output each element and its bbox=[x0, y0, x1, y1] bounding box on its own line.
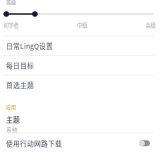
button[interactable]: 首选主题 bbox=[0, 75, 160, 94]
staticText: 高级 bbox=[145, 21, 155, 29]
button[interactable]: 日常LingQ设置 bbox=[0, 36, 160, 55]
staticText: 系统 bbox=[6, 126, 18, 134]
staticText: 首选主题 bbox=[6, 80, 34, 90]
staticText: 应用 bbox=[6, 103, 16, 110]
staticText: 等级 bbox=[6, 0, 16, 6]
staticText: 使用行动网路下载 bbox=[6, 138, 62, 148]
button[interactable]: 每日目标 bbox=[0, 56, 160, 75]
button[interactable]: 使用行动网路下载 bbox=[0, 133, 160, 153]
staticText: 主题 bbox=[6, 114, 20, 124]
staticText: 初学者 bbox=[3, 21, 18, 29]
staticText: 每日目标 bbox=[6, 60, 34, 70]
staticText: 中级 bbox=[77, 21, 87, 29]
button[interactable]: 主题 bbox=[0, 111, 160, 133]
staticText: 日常LingQ设置 bbox=[6, 41, 53, 51]
